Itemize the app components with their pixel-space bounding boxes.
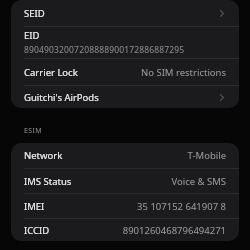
button[interactable]: ICCID xyxy=(11,219,239,241)
staticText: IMS Status xyxy=(24,175,72,188)
button[interactable]: Guitchi's AirPods xyxy=(11,86,239,108)
button[interactable]: EID xyxy=(11,27,239,58)
staticText: ICCID xyxy=(24,224,50,237)
staticText: EID xyxy=(24,29,40,42)
staticText: Voice & SMS xyxy=(78,175,226,188)
button[interactable]: IMEI xyxy=(11,194,239,218)
staticText: Guitchi's AirPods xyxy=(24,91,99,104)
staticText: No SIM restrictions xyxy=(84,66,226,79)
staticText: Network xyxy=(24,149,63,162)
staticText: SEID xyxy=(24,7,45,20)
staticText: T-Mobile xyxy=(69,149,226,162)
staticText: IMEI xyxy=(24,200,45,213)
staticText: ESIM xyxy=(24,126,42,136)
button[interactable]: SEID xyxy=(11,0,239,26)
button[interactable]: IMS Status xyxy=(11,169,239,193)
staticText: 35 107152 641907 8 xyxy=(51,200,226,213)
staticText: 8901260468796494271 xyxy=(56,224,226,237)
button[interactable]: Carrier Lock xyxy=(11,59,239,85)
staticText: 89049032007208888900172886887295 xyxy=(24,44,185,56)
button[interactable]: Network xyxy=(11,143,239,168)
staticText: Carrier Lock xyxy=(24,66,78,79)
